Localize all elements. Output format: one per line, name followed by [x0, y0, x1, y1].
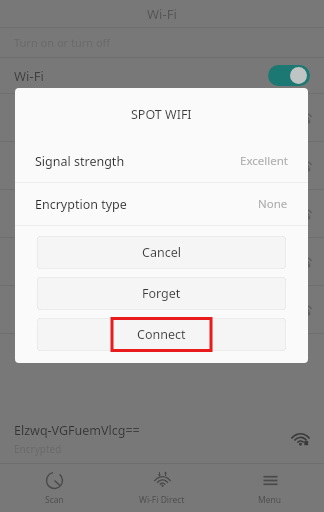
button[interactable]: Encryption type [35, 183, 288, 225]
staticText: Wi-Fi [14, 67, 44, 85]
button[interactable]: Wi-Fi toggle [268, 65, 310, 86]
button[interactable]: Forget [37, 277, 286, 310]
staticText: Wi-Fi [147, 5, 177, 23]
staticText: Encrypted [14, 442, 62, 456]
button[interactable]: Scan [0, 464, 108, 512]
staticText: Wi-Fi Direct [139, 494, 185, 506]
staticText: Turn on or turn off [14, 35, 111, 50]
button[interactable]: Menu [216, 464, 324, 512]
staticText: Encryption type [35, 196, 127, 213]
button[interactable]: Cancel [37, 236, 286, 269]
button[interactable]: Elzwq-VGFuemVlcg== [14, 415, 310, 463]
staticText: Forget [142, 285, 181, 302]
button[interactable]: Connect [37, 318, 286, 351]
staticText: SPOT WIFI [131, 106, 192, 123]
staticText: None [258, 196, 288, 212]
staticText: Signal strength [35, 153, 125, 170]
button[interactable]: Signal strength [35, 140, 288, 182]
staticText: Connect [137, 326, 186, 343]
staticText: Menu [258, 494, 282, 506]
staticText: Elzwq-VGFuemVlcg== [14, 422, 140, 439]
button[interactable]: Wi-Fi Direct [108, 464, 216, 512]
staticText: Scan [45, 494, 64, 506]
staticText: Cancel [142, 244, 181, 261]
staticText: Excellent [240, 153, 288, 169]
